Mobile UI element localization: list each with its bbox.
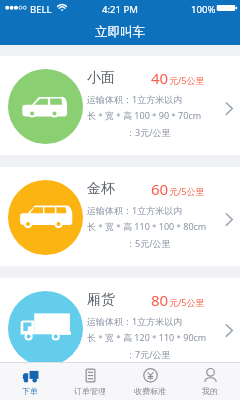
staticText: 元/5公里: [169, 296, 205, 308]
staticText: 厢货: [87, 291, 115, 309]
staticText: 运输体积：1立方米以内: [87, 315, 183, 327]
staticText: 运输体积：1立方米以内: [87, 93, 183, 105]
staticText: 小面: [87, 69, 115, 87]
staticText: 4:21 PM: [102, 3, 139, 16]
staticText: 长＊宽＊高 110＊100＊80cm: [87, 220, 207, 232]
button[interactable]: 厢货: [0, 278, 240, 362]
staticText: 金杯: [87, 180, 115, 198]
button[interactable]: 下单: [0, 363, 60, 400]
staticText: BELL: [30, 3, 52, 16]
staticText: 长＊宽＊高 120＊110＊90cm: [87, 331, 207, 343]
staticText: 元/5公里: [169, 185, 205, 197]
staticText: 80: [151, 290, 169, 310]
staticText: 100%: [191, 3, 216, 16]
staticText: ：7元/公里: [126, 348, 171, 360]
staticText: 40: [151, 68, 169, 88]
button[interactable]: 我的: [180, 363, 240, 400]
button[interactable]: 金杯: [0, 167, 240, 266]
staticText: 我的: [202, 386, 218, 396]
staticText: 收费标准: [134, 386, 166, 396]
button[interactable]: 小面: [0, 56, 240, 155]
staticText: 立即叫车: [95, 24, 145, 40]
staticText: 60: [151, 179, 169, 199]
staticText: 下单: [22, 386, 38, 396]
staticText: 长＊宽＊高 100＊90＊70cm: [87, 109, 202, 121]
staticText: 订单管理: [74, 386, 106, 396]
button[interactable]: 收费标准: [120, 363, 180, 400]
staticText: 运输体积：1立方米以内: [87, 204, 183, 216]
staticText: 元/5公里: [169, 74, 205, 86]
staticText: ：3元/公里: [126, 126, 171, 138]
staticText: ：5元/公里: [126, 237, 171, 249]
button[interactable]: 订单管理: [60, 363, 120, 400]
